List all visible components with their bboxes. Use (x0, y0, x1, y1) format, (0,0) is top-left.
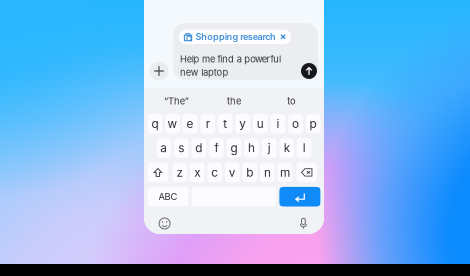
staticText: q (151, 117, 158, 131)
staticText: new laptop (180, 67, 228, 78)
staticText: h (248, 141, 255, 155)
button[interactable]: c (207, 163, 222, 182)
staticText: o (292, 117, 299, 131)
button[interactable]: Shopping research (179, 29, 291, 44)
staticText: w (167, 117, 177, 131)
button[interactable]: Add attachment (149, 61, 168, 80)
button[interactable]: b (242, 163, 257, 182)
button[interactable]: f (209, 138, 224, 158)
staticText: b (246, 165, 253, 179)
staticText: g (230, 141, 237, 155)
button[interactable]: u (253, 114, 268, 134)
staticText: d (195, 141, 202, 155)
staticText: to (287, 95, 296, 107)
staticText: x (194, 165, 200, 179)
button[interactable]: Shift (148, 163, 168, 182)
button[interactable]: z (172, 163, 187, 182)
staticText: l (303, 141, 306, 155)
staticText: Shopping research (195, 31, 276, 42)
staticText: r (206, 117, 210, 131)
staticText: ABC (159, 191, 178, 202)
button[interactable]: e (183, 114, 197, 134)
button[interactable]: k (279, 138, 294, 158)
staticText: y (239, 117, 246, 131)
button[interactable]: Dictate (293, 213, 313, 233)
button[interactable]: “The” (148, 88, 205, 114)
button[interactable]: t (218, 114, 233, 134)
staticText: k (284, 141, 290, 155)
button[interactable]: x (190, 163, 204, 182)
button[interactable]: return (279, 187, 320, 206)
staticText: f (214, 141, 218, 155)
button[interactable]: n (260, 163, 275, 182)
button[interactable]: j (262, 138, 276, 158)
staticText: t (223, 117, 227, 131)
button[interactable]: g (227, 138, 241, 158)
button[interactable]: Send (301, 63, 317, 79)
button[interactable]: d (191, 138, 206, 158)
button[interactable]: to (263, 88, 320, 114)
button[interactable]: s (174, 138, 189, 158)
staticText: u (257, 117, 264, 131)
button[interactable]: y (235, 114, 250, 134)
button[interactable]: o (288, 114, 303, 134)
button[interactable]: ABC (148, 187, 189, 206)
button[interactable]: a (156, 138, 171, 158)
staticText: e (187, 117, 194, 131)
staticText: j (268, 141, 271, 155)
button[interactable]: the (205, 88, 263, 114)
button[interactable]: Delete (296, 163, 317, 182)
staticText: Help me find a powerful (180, 53, 281, 65)
button[interactable]: v (225, 163, 240, 182)
button[interactable]: h (244, 138, 259, 158)
staticText: z (177, 165, 183, 179)
staticText: a (160, 141, 167, 155)
button[interactable]: r (200, 114, 215, 134)
staticText: c (211, 165, 218, 179)
staticText: “The” (164, 95, 189, 107)
staticText: i (276, 117, 279, 131)
button[interactable]: w (165, 114, 180, 134)
staticText: m (280, 165, 290, 179)
staticText: s (178, 141, 184, 155)
staticText: n (264, 165, 271, 179)
button[interactable]: Emoji (155, 213, 175, 233)
button[interactable]: q (148, 114, 162, 134)
staticText: p (310, 117, 317, 131)
button[interactable]: p (306, 114, 320, 134)
button[interactable]: m (278, 163, 292, 182)
staticText: the (227, 95, 241, 107)
button[interactable]: l (297, 138, 312, 158)
button[interactable]: i (271, 114, 285, 134)
staticText: v (229, 165, 236, 179)
